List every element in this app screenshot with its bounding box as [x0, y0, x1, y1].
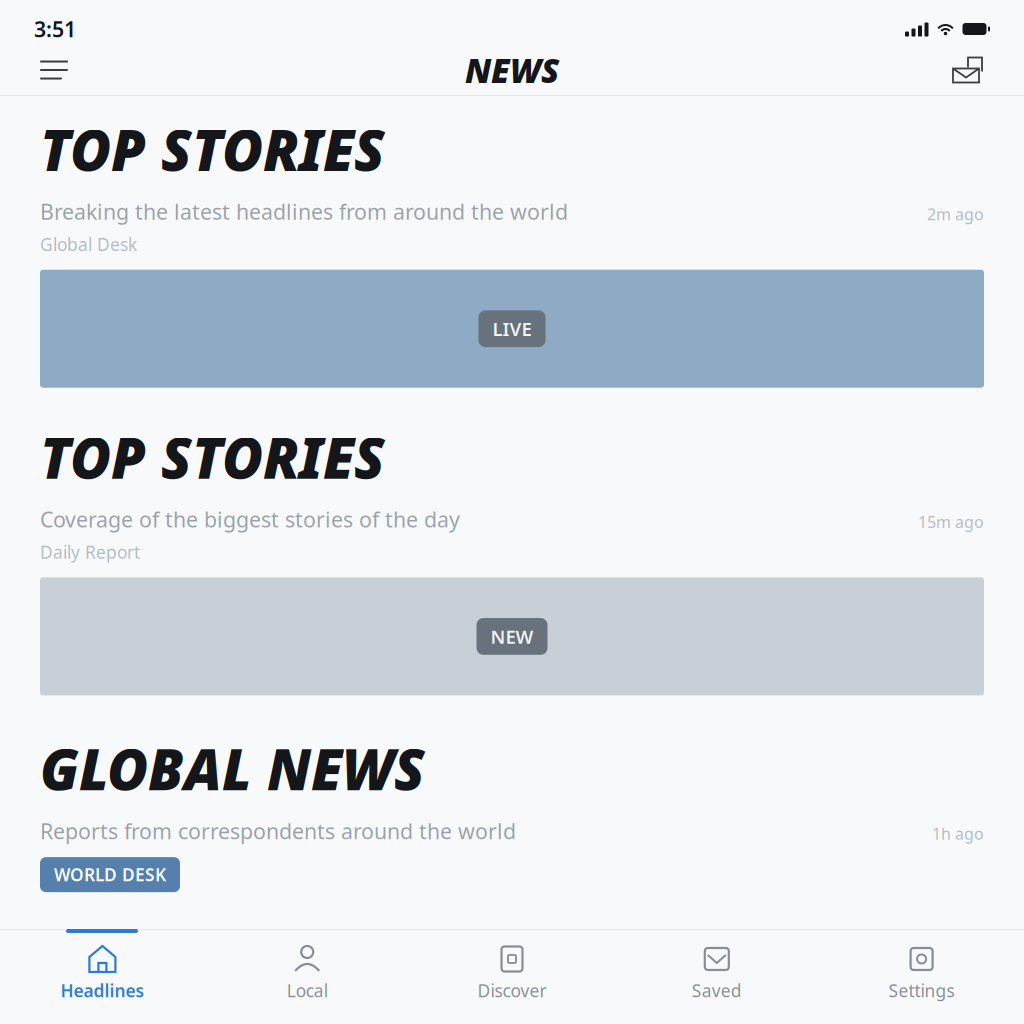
staticText: 15m ago	[918, 511, 984, 532]
button[interactable]: TOP STORIES	[0, 404, 1024, 711]
staticText: Saved	[692, 979, 742, 1002]
button[interactable]: Saved	[614, 929, 819, 1024]
button[interactable]: Settings	[819, 929, 1024, 1024]
button[interactable]: Menu	[40, 47, 92, 93]
staticText: NEWS	[465, 48, 559, 92]
staticText: Daily Report	[40, 540, 140, 563]
staticText: 1h ago	[932, 823, 984, 844]
staticText: TOP STORIES	[40, 112, 385, 186]
staticText: Breaking the latest headlines from aroun…	[40, 197, 568, 226]
staticText: Discover	[477, 979, 546, 1002]
button[interactable]: GLOBAL NEWS	[0, 711, 1024, 922]
button[interactable]: Discover	[410, 929, 614, 1024]
staticText: Global Desk	[40, 233, 137, 256]
staticText: Coverage of the biggest stories of the d…	[40, 505, 460, 533]
staticText: 2m ago	[927, 203, 984, 225]
staticText: WORLD DESK	[54, 863, 166, 886]
staticText: Reports from correspondents around the w…	[40, 817, 516, 845]
staticText: NEW	[490, 624, 533, 649]
button[interactable]: Local	[205, 929, 410, 1024]
button[interactable]: TOP STORIES	[0, 96, 1024, 404]
staticText: LIVE	[492, 316, 531, 341]
button[interactable]: Headlines	[0, 929, 205, 1024]
staticText: Settings	[889, 979, 955, 1002]
staticText: TOP STORIES	[40, 420, 385, 494]
staticText: Headlines	[60, 979, 144, 1002]
staticText: Local	[287, 979, 328, 1002]
button[interactable]: Inbox	[932, 47, 984, 93]
staticText: GLOBAL NEWS	[40, 731, 425, 806]
staticText: 3:51	[34, 15, 76, 43]
